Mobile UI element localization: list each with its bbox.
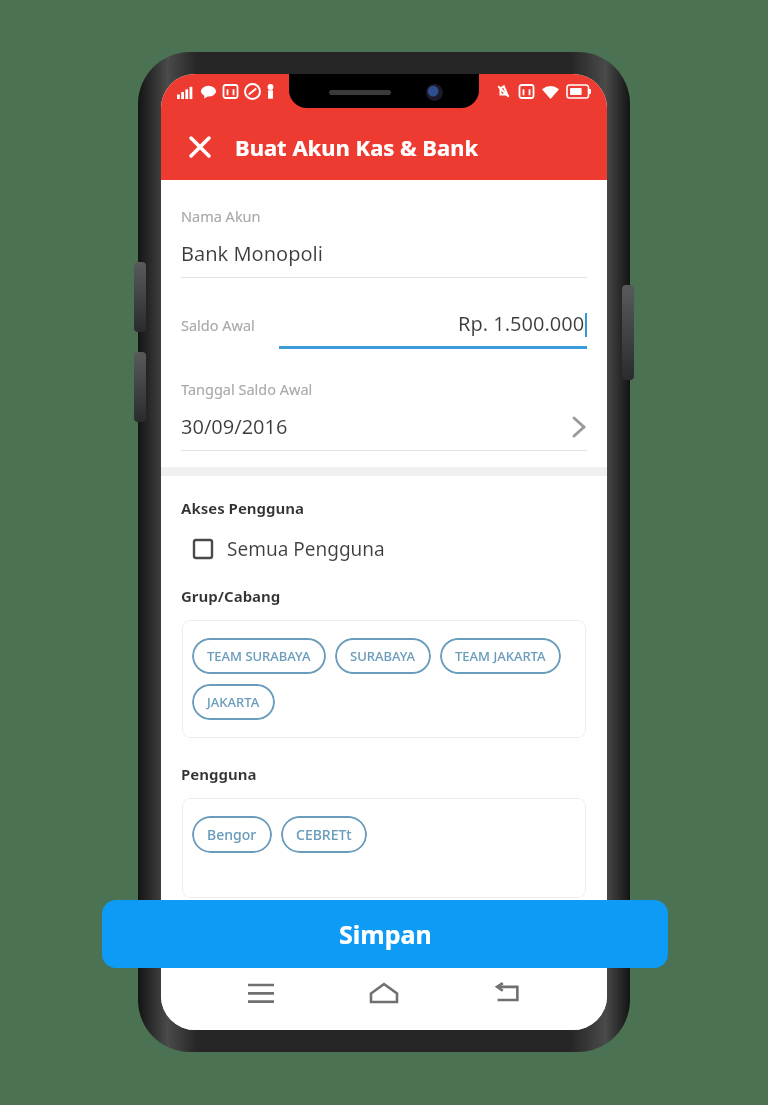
staticText: Simpan xyxy=(339,917,432,951)
staticText: Akses Pengguna xyxy=(181,498,305,518)
staticText: Saldo Awal xyxy=(181,315,255,335)
button[interactable]: Home xyxy=(360,969,408,1017)
button[interactable]: JAKARTA xyxy=(192,684,275,720)
button[interactable]: Simpan xyxy=(102,900,668,968)
button[interactable]: SURABAYA xyxy=(335,638,431,674)
button[interactable]: Close xyxy=(183,130,217,164)
staticText: Bank Monopoli xyxy=(181,240,323,267)
staticText: Nama Akun xyxy=(181,206,261,226)
button[interactable]: Menu xyxy=(237,969,285,1017)
staticText: Tanggal Saldo Awal xyxy=(181,379,313,399)
staticText: JAKARTA xyxy=(207,693,260,711)
button[interactable]: TEAM SURABAYA xyxy=(192,638,326,674)
staticText: Rp. 1.500.000 xyxy=(458,310,585,337)
staticText: CEBRETt xyxy=(296,825,352,844)
staticText: Pengguna xyxy=(181,764,257,784)
button[interactable]: Bank Monopoli xyxy=(161,240,607,277)
button[interactable]: 30/09/2016 xyxy=(161,413,607,450)
staticText: SURABAYA xyxy=(350,647,416,665)
staticText: 30/09/2016 xyxy=(181,413,288,440)
button[interactable]: Bengor xyxy=(192,816,272,853)
staticText: Semua Pengguna xyxy=(227,536,385,562)
button[interactable]: Saldo Awal xyxy=(161,310,607,337)
button[interactable]: CEBRETt xyxy=(281,816,367,853)
staticText: TEAM JAKARTA xyxy=(455,647,546,665)
staticText: Bengor xyxy=(207,825,257,844)
button[interactable]: Back xyxy=(484,969,532,1017)
staticText: Grup/Cabang xyxy=(181,586,281,606)
button[interactable]: TEAM JAKARTA xyxy=(440,638,561,674)
button[interactable]: Semua Pengguna xyxy=(193,536,385,562)
staticText: TEAM SURABAYA xyxy=(207,647,311,665)
staticText: Buat Akun Kas & Bank xyxy=(235,132,479,162)
